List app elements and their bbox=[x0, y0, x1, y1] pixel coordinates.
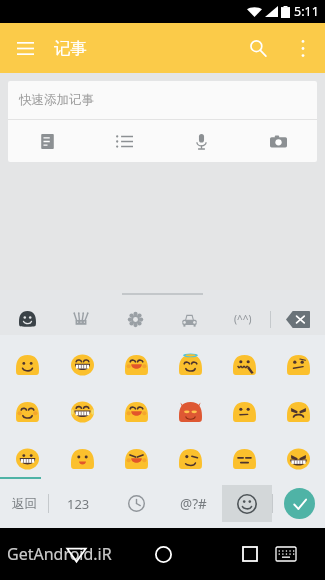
button[interactable]: Emoji bbox=[217, 388, 271, 435]
button[interactable]: Objects bbox=[54, 303, 108, 335]
button[interactable]: Travel bbox=[162, 303, 216, 335]
button[interactable]: Emoji bbox=[0, 388, 55, 435]
button[interactable]: Emoji bbox=[271, 341, 325, 388]
button[interactable]: Smileys bbox=[0, 303, 54, 335]
button[interactable]: Emoji bbox=[55, 341, 109, 388]
button[interactable]: Emoji bbox=[109, 435, 163, 482]
button[interactable]: Open navigation drawer bbox=[0, 23, 50, 73]
button[interactable]: Emoji bbox=[109, 341, 163, 388]
staticText: (^^) bbox=[234, 312, 252, 326]
button[interactable]: Home bbox=[99, 528, 227, 580]
button[interactable]: Emoji bbox=[163, 388, 217, 435]
button[interactable]: 快速添加记事 bbox=[8, 81, 317, 119]
button[interactable]: @?# bbox=[165, 479, 222, 528]
button[interactable]: Emoji bbox=[163, 435, 217, 482]
button[interactable]: Emoji bbox=[271, 388, 325, 435]
button[interactable]: Photo note bbox=[240, 120, 317, 162]
staticText: @?# bbox=[180, 495, 207, 513]
button[interactable]: Emoji keyboard bbox=[222, 485, 272, 522]
button[interactable]: Emoji bbox=[217, 341, 271, 388]
button[interactable]: Change keyboard bbox=[273, 528, 298, 580]
button[interactable]: Emoji bbox=[217, 435, 271, 482]
staticText: 快速添加记事 bbox=[19, 92, 94, 108]
button[interactable]: Backspace bbox=[271, 303, 325, 335]
button[interactable]: 123 bbox=[49, 479, 107, 528]
button[interactable]: Nature bbox=[108, 303, 162, 335]
button[interactable]: Voice note bbox=[163, 120, 240, 162]
button[interactable]: More options bbox=[280, 23, 325, 73]
staticText: 123 bbox=[67, 495, 90, 513]
button[interactable]: Emoji bbox=[109, 388, 163, 435]
button[interactable]: Search bbox=[235, 23, 280, 73]
staticText: 5:11 bbox=[294, 3, 319, 20]
button[interactable]: Emoji bbox=[0, 435, 55, 482]
button[interactable]: (^^) bbox=[216, 303, 270, 335]
button[interactable]: Emoji bbox=[55, 388, 109, 435]
button[interactable]: New list bbox=[86, 120, 163, 162]
button[interactable]: Emoji bbox=[163, 341, 217, 388]
button[interactable]: Emoji bbox=[55, 435, 109, 482]
staticText: 记事 bbox=[54, 38, 87, 59]
button[interactable]: Back bbox=[53, 528, 99, 580]
staticText: GetAndroid.iR bbox=[7, 543, 112, 565]
button[interactable]: Recent apps bbox=[227, 528, 273, 580]
button[interactable]: 返回 bbox=[0, 479, 48, 528]
button[interactable]: Emoji bbox=[271, 435, 325, 482]
button[interactable]: Emoji bbox=[0, 341, 55, 388]
button[interactable]: Done bbox=[273, 479, 325, 528]
button[interactable]: Recently used bbox=[107, 479, 165, 528]
button[interactable]: New note bbox=[8, 120, 86, 162]
staticText: 返回 bbox=[12, 496, 37, 512]
